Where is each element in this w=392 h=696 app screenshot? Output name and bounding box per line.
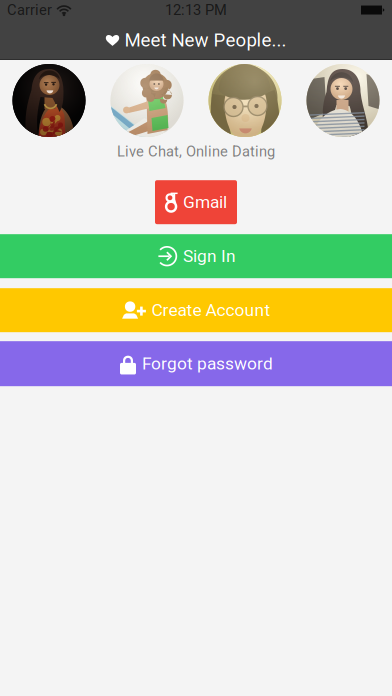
button[interactable]: Sign In (0, 234, 392, 278)
button[interactable]: Create Account (0, 288, 392, 332)
staticText: Forgot password (142, 353, 273, 374)
button[interactable]: Gmail (155, 180, 237, 224)
button[interactable]: Forgot password (0, 341, 392, 386)
staticText: 12:13 PM (165, 1, 227, 19)
staticText: Meet New People... (124, 29, 286, 51)
staticText: Sign In (183, 246, 236, 266)
staticText: Gmail (183, 192, 227, 212)
staticText: Live Chat, Online Dating (117, 143, 275, 160)
staticText: Carrier (7, 1, 52, 19)
staticText: Create Account (151, 300, 270, 320)
